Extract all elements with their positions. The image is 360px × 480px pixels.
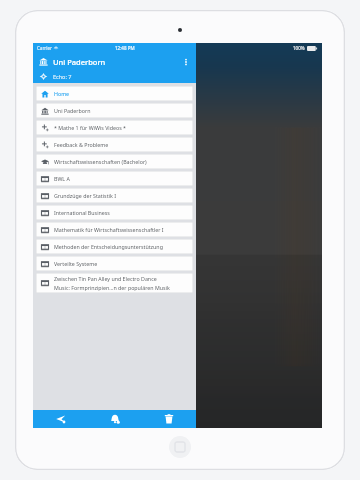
staticText: Mathematik für Wirtschaftswissenschaftle…	[54, 226, 164, 233]
button[interactable]: Send	[33, 410, 88, 428]
staticText: Verteilte Systeme	[54, 260, 98, 267]
staticText: Grundzüge der Statistik I	[54, 192, 116, 199]
staticText: Feedback & Probleme	[54, 141, 109, 148]
button[interactable]: Uni Paderborn	[36, 103, 193, 118]
staticText: Zwischen Tin Pan Alley und Electro Dance	[54, 275, 157, 282]
button[interactable]: Feedback & Probleme	[36, 137, 193, 152]
button[interactable]: * Mathe 1 für WiWis Videos *	[36, 120, 193, 135]
staticText: 12:48 PM	[115, 45, 135, 51]
button[interactable]: Zwischen Tin Pan Alley und Electro Dance	[36, 273, 193, 293]
staticText: * Mathe 1 für WiWis Videos *	[54, 124, 127, 131]
button[interactable]: Home	[36, 86, 193, 101]
staticText: International Business	[54, 209, 110, 216]
staticText: Methoden der Entscheidungsunterstützung	[54, 243, 163, 250]
staticText: BWL A	[54, 175, 70, 182]
button[interactable]: Grundzüge der Statistik I	[36, 188, 193, 203]
button[interactable]: International Business	[36, 205, 193, 220]
button[interactable]: Mathematik für Wirtschaftswissenschaftle…	[36, 222, 193, 237]
button[interactable]: Methoden der Entscheidungsunterstützung	[36, 239, 193, 254]
button[interactable]: Echo: 7	[33, 70, 196, 83]
button[interactable]: Verteilte Systeme	[36, 256, 193, 271]
staticText: Echo: 7	[53, 73, 72, 80]
staticText: 100%	[293, 45, 305, 51]
staticText: Uni Paderborn	[54, 107, 91, 114]
button[interactable]: BWL A	[36, 171, 193, 186]
staticText: Wirtschaftswissenschaften (Bachelor)	[54, 158, 147, 165]
staticText: Home	[54, 90, 70, 97]
button[interactable]: Wirtschaftswissenschaften (Bachelor)	[36, 154, 193, 169]
button[interactable]: More options	[179, 55, 193, 69]
button[interactable]: Notifications	[88, 410, 142, 428]
button[interactable]: Delete	[142, 410, 196, 428]
staticText: Carrier	[37, 45, 52, 51]
button[interactable]: Uni Paderborn	[33, 53, 196, 70]
staticText: Uni Paderborn	[53, 57, 106, 67]
staticText: Music: Formprinzipien…n der populären Mu…	[54, 284, 170, 291]
